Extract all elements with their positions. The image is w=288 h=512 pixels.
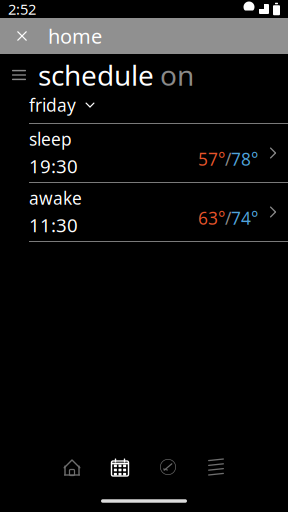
staticText: / — [225, 206, 231, 229]
staticText: / — [225, 147, 231, 170]
button[interactable]: Energy — [144, 450, 192, 484]
staticText: 63° — [198, 206, 225, 229]
staticText: 2:52 — [8, 0, 36, 19]
button[interactable]: Menu — [8, 64, 30, 86]
staticText: sleep — [29, 128, 72, 151]
staticText: 57° — [198, 147, 225, 170]
button[interactable]: Close — [0, 18, 44, 54]
staticText: 19:30 — [29, 154, 78, 178]
staticText: 74° — [231, 206, 258, 229]
button[interactable]: friday — [0, 88, 288, 116]
button[interactable]: Air — [192, 450, 240, 484]
button[interactable]: sleep — [0, 124, 288, 182]
button[interactable]: Home — [48, 450, 96, 484]
staticText: 11:30 — [29, 213, 78, 237]
staticText: friday — [29, 93, 76, 116]
staticText: schedule — [38, 56, 154, 94]
staticText: on — [160, 56, 194, 94]
staticText: home — [48, 23, 102, 49]
button[interactable]: Schedule — [96, 450, 144, 484]
button[interactable]: awake — [0, 183, 288, 241]
staticText: 78° — [231, 147, 258, 170]
staticText: awake — [29, 187, 82, 210]
